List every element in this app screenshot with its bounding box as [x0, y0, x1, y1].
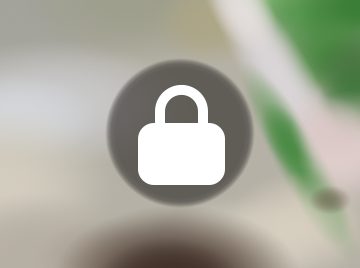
button[interactable]: Locked [0, 0, 360, 268]
